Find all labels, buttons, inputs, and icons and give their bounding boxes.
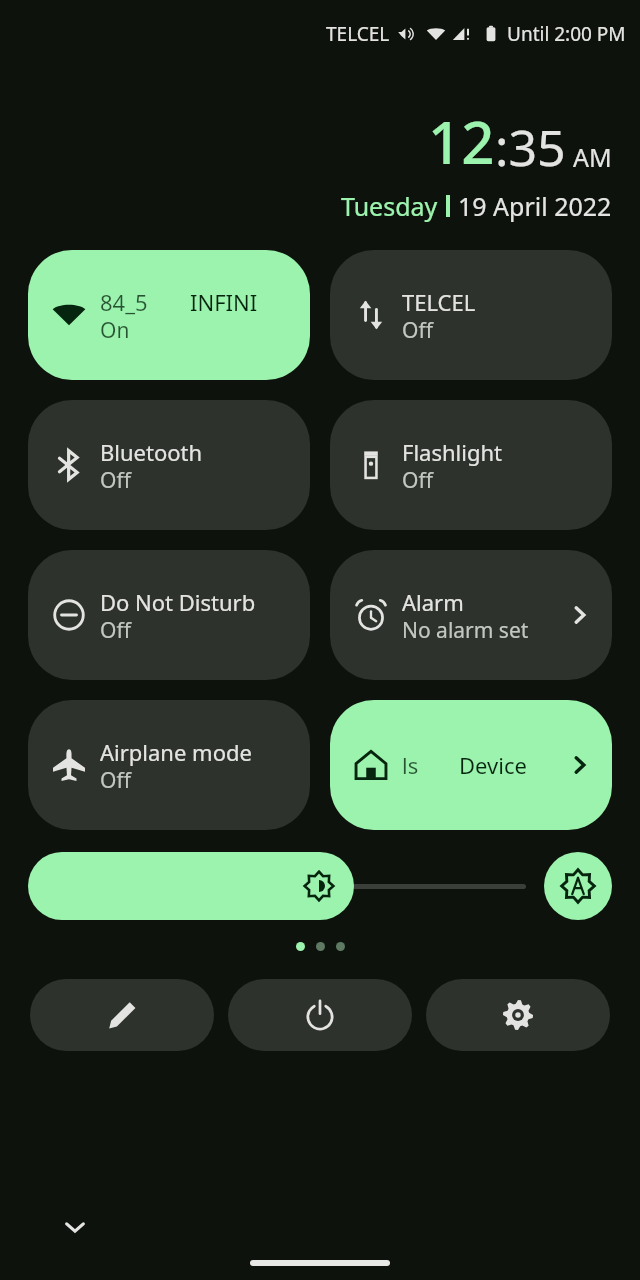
staticText: Device	[459, 750, 527, 780]
staticText: Until 2:00 PM	[507, 21, 626, 47]
staticText: Off	[100, 616, 131, 645]
button[interactable]: Airplane mode	[28, 700, 310, 830]
staticText: Alarm	[402, 587, 464, 617]
staticText: AM	[573, 140, 612, 174]
button[interactable]: Internet	[28, 250, 310, 380]
staticText: INFINI	[190, 287, 258, 317]
staticText: TELCEL	[402, 287, 476, 317]
button[interactable]: Do Not Disturb	[28, 550, 310, 680]
staticText: :35	[495, 113, 566, 181]
staticText: 19 April 2022	[458, 189, 612, 223]
button[interactable]: Auto brightness	[544, 852, 612, 920]
staticText: 84_5	[100, 287, 148, 317]
staticText: Airplane mode	[100, 737, 252, 767]
button[interactable]: Settings	[426, 979, 610, 1051]
button[interactable]: Bluetooth	[28, 400, 310, 530]
staticText: 12	[428, 102, 495, 181]
button[interactable]: Collapse	[62, 1214, 88, 1240]
button[interactable]: Flashlight	[330, 400, 612, 530]
staticText: Off	[402, 466, 433, 495]
staticText: On	[100, 316, 130, 345]
staticText: ls	[402, 750, 419, 780]
button[interactable]: Edit tiles	[30, 979, 214, 1051]
staticText: Bluetooth	[100, 437, 203, 467]
button[interactable]: Brightness	[28, 852, 354, 920]
staticText: Off	[100, 766, 131, 795]
staticText: Tuesday	[341, 189, 438, 223]
staticText: Do Not Disturb	[100, 587, 256, 617]
button[interactable]: Power	[228, 979, 412, 1051]
button[interactable]: Mobile data	[330, 250, 612, 380]
staticText: Flashlight	[402, 437, 502, 467]
staticText: Off	[100, 466, 131, 495]
staticText: TELCEL	[326, 21, 390, 47]
staticText: Off	[402, 316, 433, 345]
button[interactable]: Device controls	[330, 700, 612, 830]
button[interactable]: Alarm	[330, 550, 612, 680]
staticText: No alarm set	[402, 616, 529, 645]
